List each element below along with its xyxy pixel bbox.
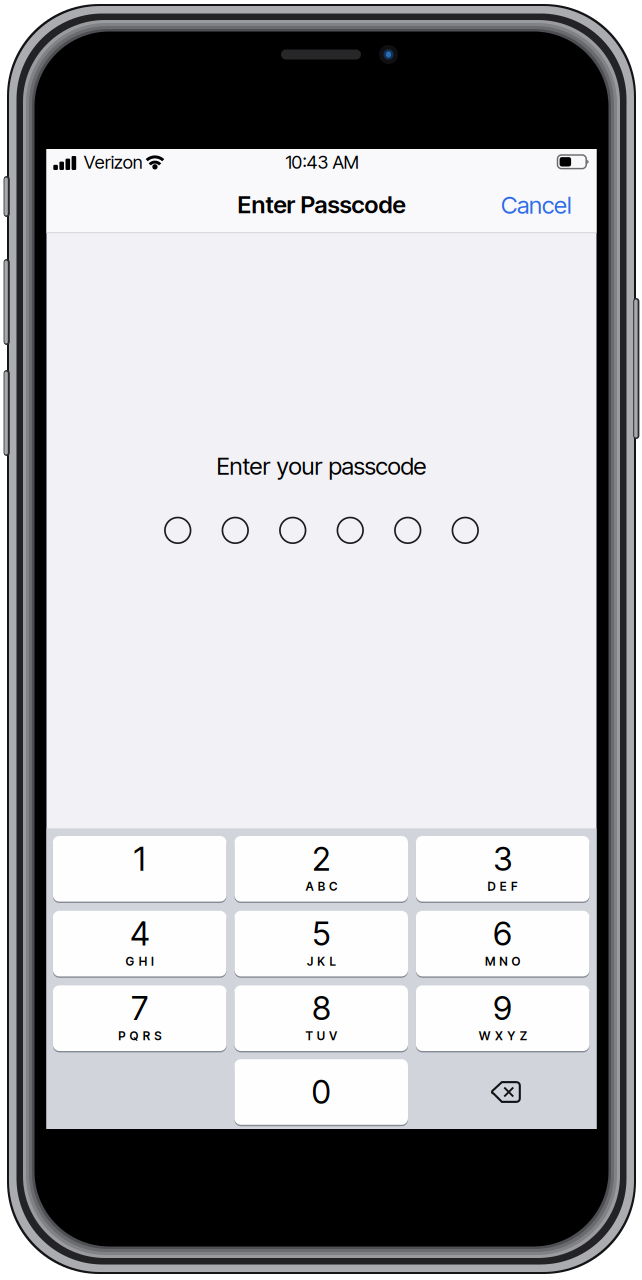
button[interactable]: 9 (416, 985, 589, 1052)
button[interactable]: 2 (234, 836, 408, 903)
staticText: JKL (307, 954, 335, 968)
staticText: 1 (134, 839, 146, 879)
staticText: 5 (312, 914, 330, 953)
staticText: 9 (493, 988, 512, 1028)
button[interactable]: 4 (53, 911, 226, 978)
staticText: 2 (312, 839, 330, 879)
staticText: TUV (305, 1029, 337, 1043)
staticText: 8 (312, 988, 330, 1028)
staticText: 7 (131, 988, 148, 1028)
staticText: 6 (493, 914, 512, 953)
staticText: GHI (125, 954, 154, 968)
staticText: Enter your passcode (216, 451, 426, 480)
button[interactable]: 6 (416, 911, 589, 978)
staticText: Cancel (501, 190, 572, 219)
staticText: MNO (485, 954, 520, 968)
staticText: ABC (305, 879, 337, 894)
staticText: PQRS (118, 1029, 161, 1043)
staticText: DEF (487, 879, 518, 894)
staticText: 0 (312, 1072, 331, 1112)
button[interactable]: 0 (234, 1059, 408, 1126)
button[interactable]: 7 (53, 985, 226, 1052)
staticText: WXYZ (479, 1029, 527, 1043)
button[interactable]: 8 (234, 985, 408, 1052)
button[interactable]: 5 (234, 911, 408, 978)
staticText: 3 (493, 839, 512, 879)
staticText: Verizon (84, 151, 143, 173)
button[interactable]: Delete (419, 1059, 593, 1125)
staticText: 10:43 AM (285, 151, 358, 173)
button[interactable]: 1 (53, 836, 226, 903)
staticText: 4 (130, 914, 149, 953)
button[interactable]: Cancel (452, 184, 572, 226)
staticText: Enter Passcode (237, 190, 405, 219)
button[interactable]: 3 (416, 836, 589, 903)
